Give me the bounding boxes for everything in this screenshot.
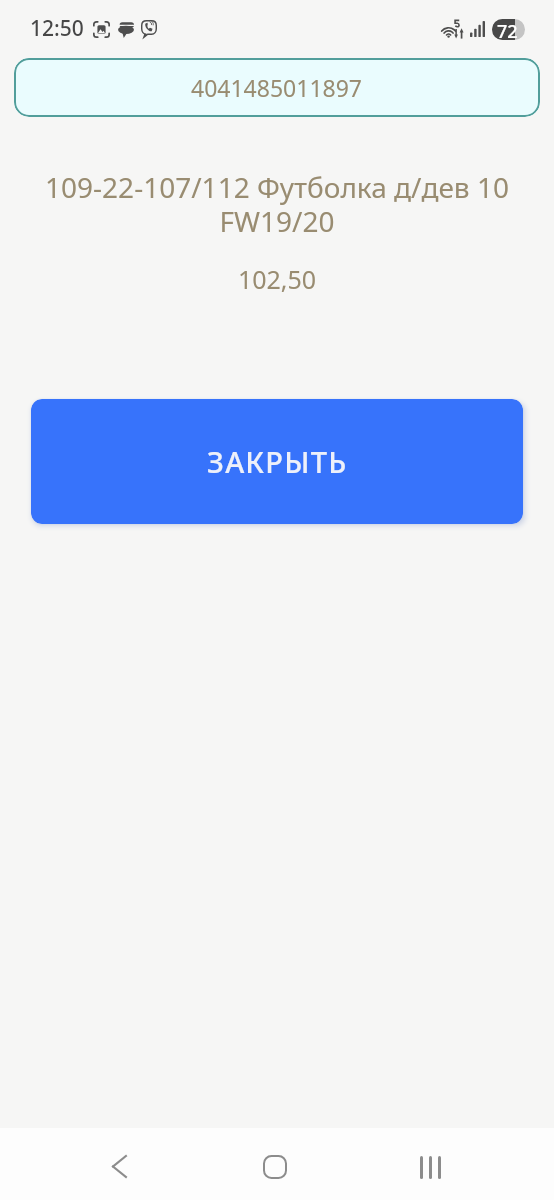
staticText: 4041485011897 <box>191 72 363 103</box>
button[interactable]: Back <box>95 1135 153 1193</box>
staticText: 109-22-107/112 Футболка д/дев 10 FW19/20 <box>24 168 530 240</box>
button[interactable]: ЗАКРЫТЬ <box>31 399 523 524</box>
button[interactable]: Recents <box>401 1135 459 1193</box>
staticText: 102,50 <box>0 262 554 296</box>
staticText: ЗАКРЫТЬ <box>207 442 348 481</box>
button[interactable]: 4041485011897 <box>14 58 540 117</box>
staticText: 72 <box>497 19 518 40</box>
button[interactable]: Home <box>248 1135 306 1193</box>
staticText: 12:50 <box>30 14 84 43</box>
